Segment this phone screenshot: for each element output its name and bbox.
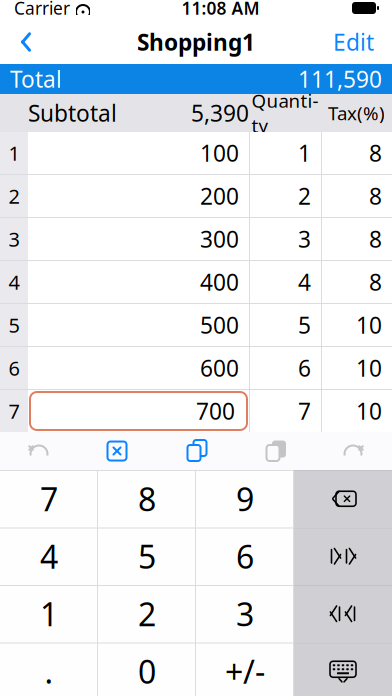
staticText: Tax(%) <box>328 101 385 125</box>
staticText: 5,390 <box>191 98 249 128</box>
staticText: Subtotal <box>28 98 117 128</box>
staticText: 2 <box>138 592 156 635</box>
staticText: 5 <box>298 310 311 340</box>
button[interactable]: Edit <box>319 20 388 64</box>
staticText: . <box>44 650 53 692</box>
staticText: 700 <box>196 396 235 426</box>
staticText: 3 <box>298 224 311 254</box>
staticText: 400 <box>200 267 239 297</box>
staticText: Edit <box>333 27 374 57</box>
button[interactable]: Backspace <box>294 470 392 527</box>
staticText: 200 <box>200 181 239 211</box>
staticText: 7 <box>40 477 58 520</box>
button[interactable]: 1 <box>0 132 392 174</box>
staticText: 8 <box>138 477 156 520</box>
button[interactable]: 5 <box>98 527 196 585</box>
button[interactable]: 3 <box>0 218 392 260</box>
staticText: 5 <box>138 535 156 577</box>
button[interactable]: 2 <box>98 585 196 642</box>
staticText: 11:08 AM <box>181 0 259 19</box>
staticText: 7 <box>8 398 19 424</box>
button[interactable]: Clear <box>78 432 156 470</box>
button[interactable]: 5 <box>0 304 392 346</box>
staticText: 6 <box>8 355 19 381</box>
staticText: 10 <box>356 310 382 340</box>
staticText: 1 <box>40 592 58 635</box>
button[interactable]: Paste <box>236 432 314 470</box>
staticText: 2 <box>298 181 311 211</box>
staticText: Quantity <box>251 88 318 138</box>
staticText: 8 <box>369 181 382 211</box>
button[interactable]: 0 <box>98 642 196 696</box>
staticText: 8 <box>369 224 382 254</box>
staticText: 0 <box>138 650 156 692</box>
staticText: 9 <box>236 477 254 520</box>
staticText: 2 <box>8 183 19 209</box>
staticText: Shopping1 <box>137 27 255 57</box>
button[interactable]: Redo <box>314 432 392 470</box>
button[interactable]: 4 <box>0 261 392 303</box>
staticText: 10 <box>356 396 382 426</box>
button[interactable]: 6 <box>0 347 392 389</box>
button[interactable]: 9 <box>196 470 294 527</box>
staticText: 600 <box>200 353 239 383</box>
button[interactable]: +/- <box>196 642 294 696</box>
staticText: 4 <box>8 269 19 295</box>
staticText: 1 <box>298 138 311 168</box>
staticText: 6 <box>298 353 311 383</box>
staticText: 500 <box>200 310 239 340</box>
button[interactable]: Copy <box>156 432 236 470</box>
button[interactable]: 6 <box>196 527 294 585</box>
button[interactable]: Back <box>4 20 48 64</box>
staticText: 7 <box>298 396 311 426</box>
staticText: 8 <box>369 267 382 297</box>
staticText: 111,590 <box>298 64 382 94</box>
staticText: 5 <box>8 312 19 338</box>
button[interactable]: Next <box>294 585 392 642</box>
button[interactable]: 8 <box>98 470 196 527</box>
staticText: 300 <box>200 224 239 254</box>
staticText: +/- <box>225 650 265 692</box>
staticText: 4 <box>40 535 58 577</box>
staticText: 100 <box>200 138 239 168</box>
button[interactable]: Hide keyboard <box>294 642 392 696</box>
staticText: 1 <box>8 140 19 166</box>
button[interactable]: . <box>0 642 98 696</box>
staticText: Total <box>10 64 62 94</box>
button[interactable]: 4 <box>0 527 98 585</box>
staticText: 8 <box>369 138 382 168</box>
staticText: 3 <box>8 226 19 252</box>
button[interactable]: 7 <box>0 390 392 432</box>
button[interactable]: 2 <box>0 175 392 217</box>
staticText: 6 <box>236 535 254 577</box>
staticText: Carrier <box>14 0 70 19</box>
staticText: 3 <box>236 592 254 635</box>
button[interactable]: Previous <box>294 527 392 585</box>
button[interactable]: 3 <box>196 585 294 642</box>
staticText: 4 <box>298 267 311 297</box>
staticText: 10 <box>356 353 382 383</box>
button[interactable]: Undo <box>0 432 78 470</box>
button[interactable]: 1 <box>0 585 98 642</box>
button[interactable]: 7 <box>0 470 98 527</box>
